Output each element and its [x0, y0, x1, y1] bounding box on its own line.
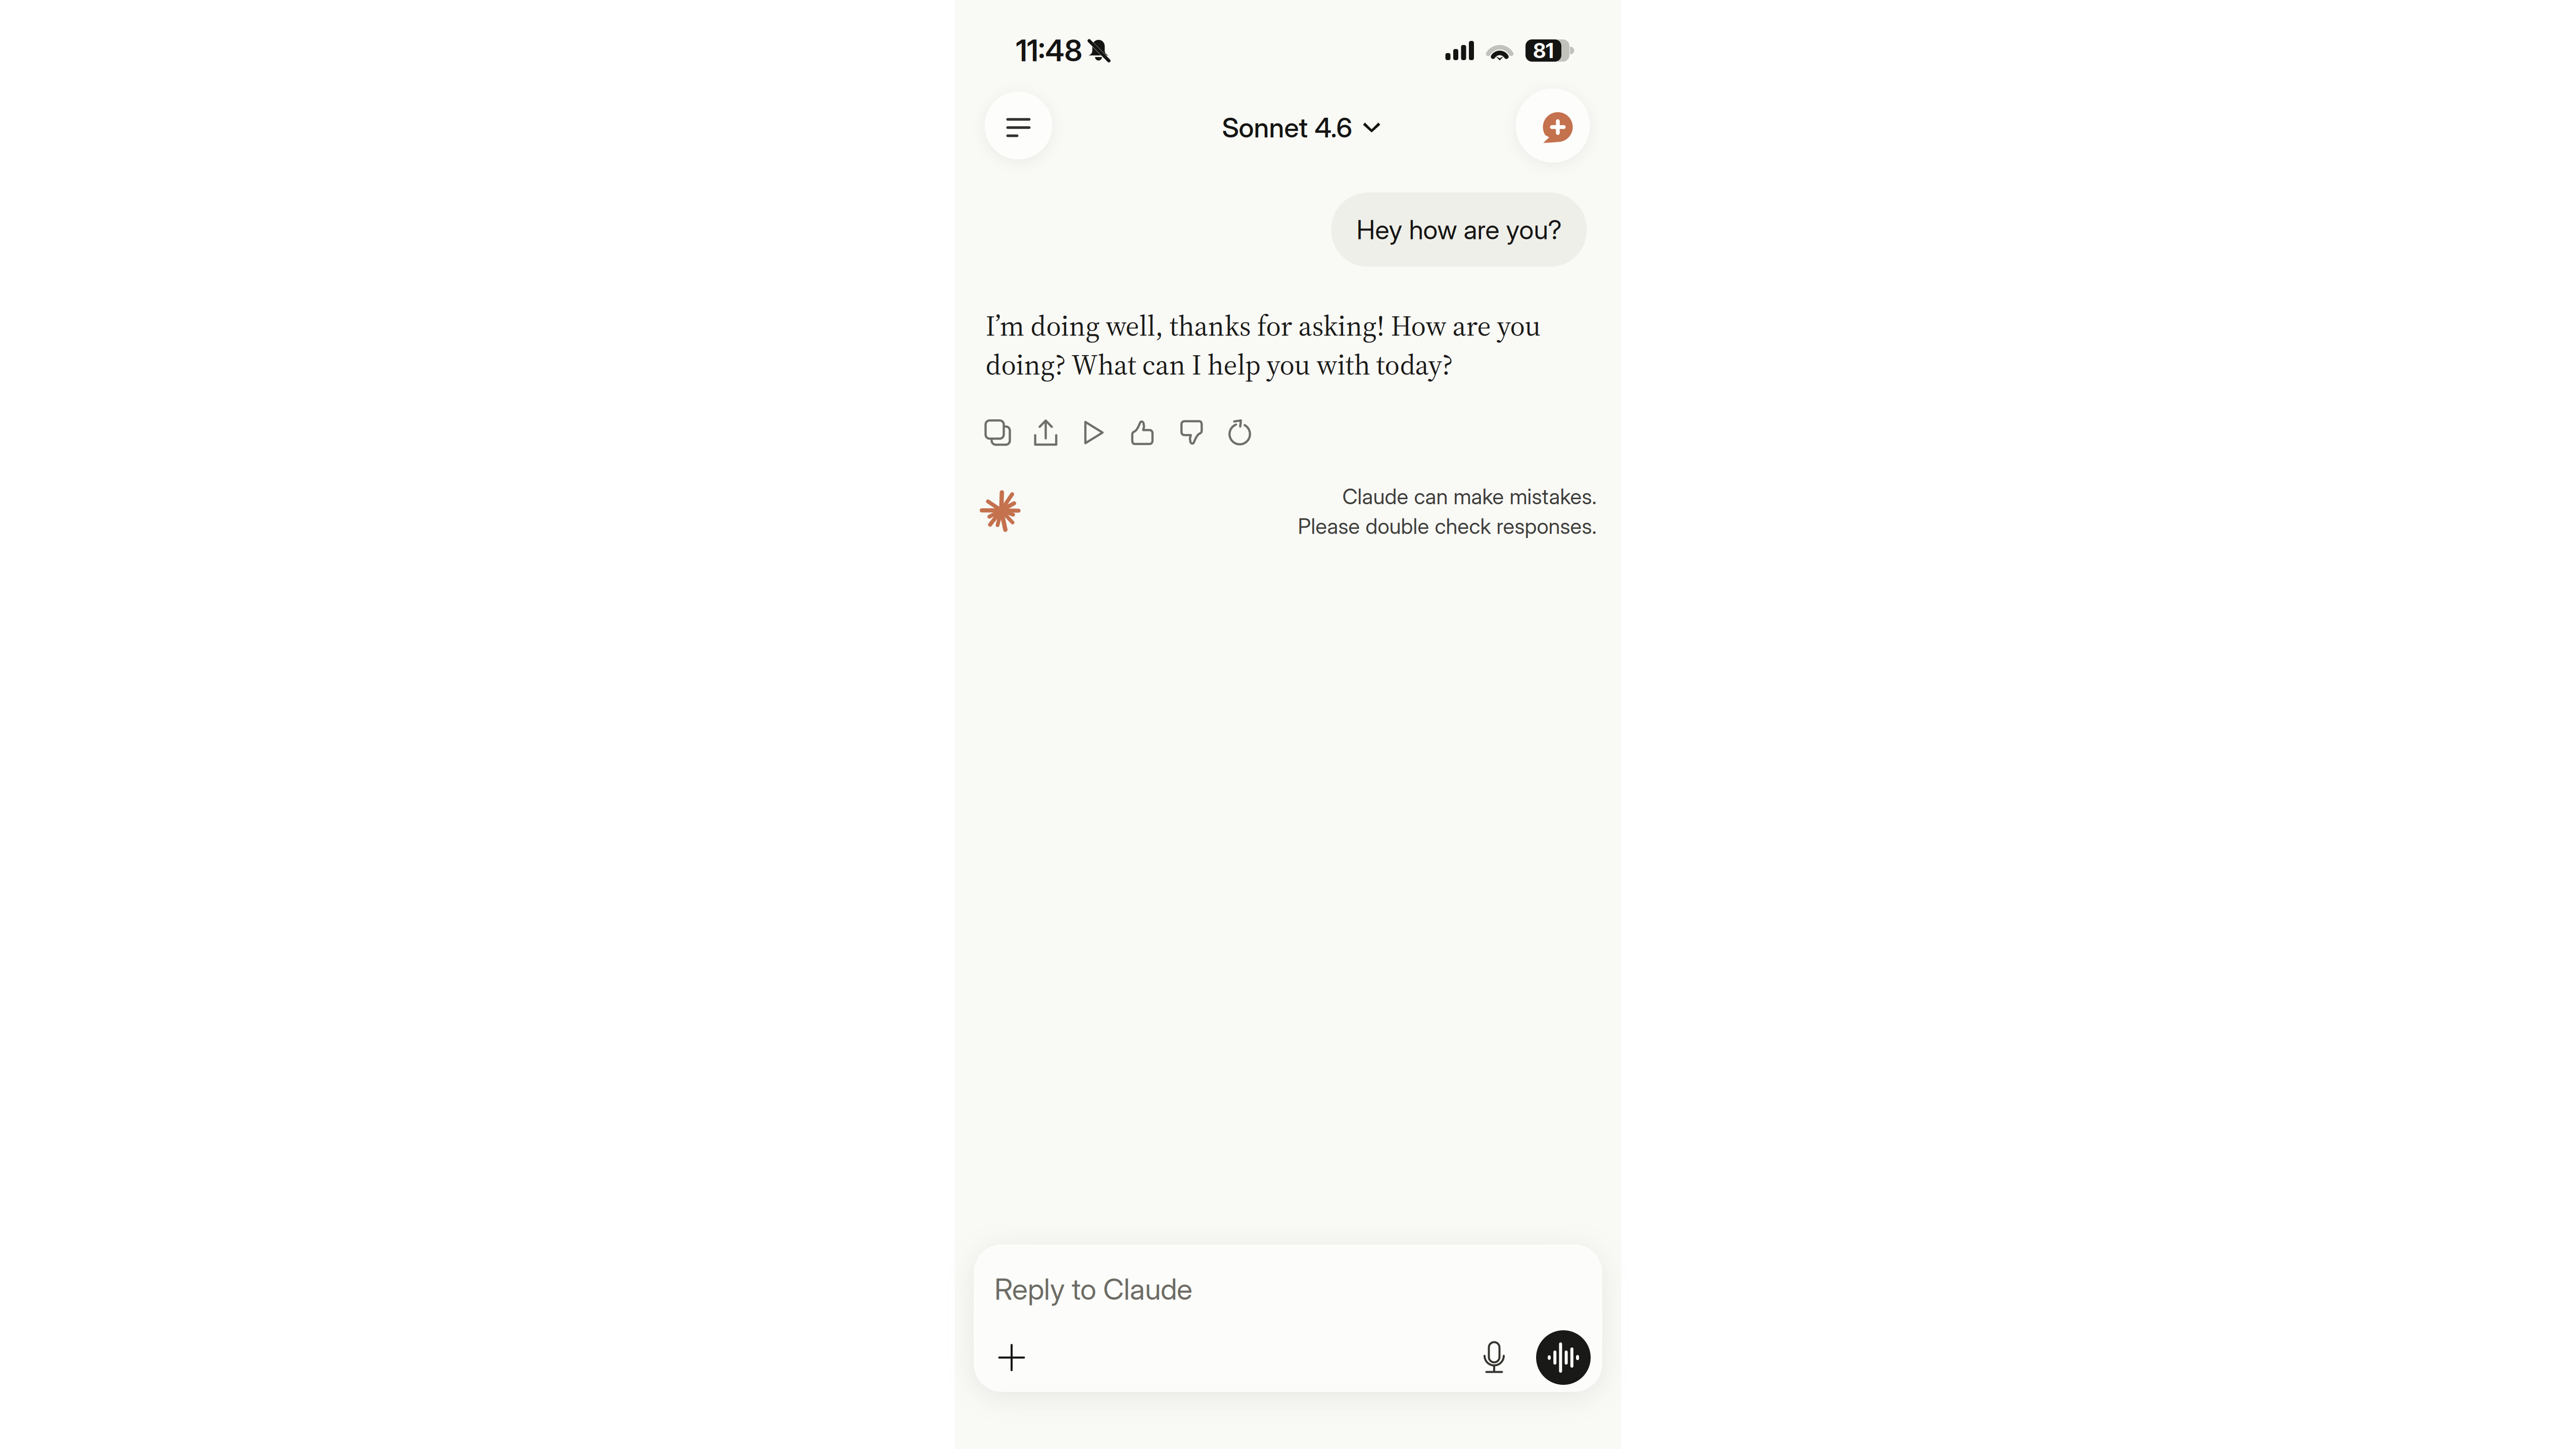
staticText: Sonnet 4.6 [1222, 111, 1352, 144]
button[interactable]: Dictate [1472, 1330, 1516, 1385]
button[interactable]: New chat [1516, 88, 1590, 163]
staticText: I’m doing well, thanks for asking! How a… [986, 306, 1541, 384]
staticText: Reply to Claude [994, 1272, 1192, 1307]
button[interactable]: Play [1083, 419, 1131, 446]
staticText: Please double check responses. [1298, 513, 1596, 539]
staticText: Hey how are you? [1356, 214, 1562, 245]
button[interactable]: Share [1034, 419, 1083, 446]
button[interactable]: Copy [986, 419, 1034, 446]
button[interactable]: Good response [1131, 419, 1180, 446]
button[interactable]: Sonnet 4.6 [1196, 94, 1372, 157]
button[interactable]: Menu [985, 92, 1052, 159]
button[interactable]: Add attachment [974, 1330, 1026, 1385]
staticText: Claude can make mistakes. [1342, 484, 1596, 509]
staticText: 81 [1533, 38, 1554, 63]
button[interactable]: Voice mode [1536, 1330, 1591, 1385]
staticText: 11:48 [1016, 33, 1082, 68]
button[interactable]: Bad response [1180, 419, 1228, 446]
button[interactable]: Retry [1228, 419, 1277, 446]
